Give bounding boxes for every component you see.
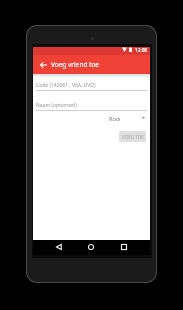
staticText: Code (142681 , V6A, DVD) xyxy=(36,82,96,89)
button[interactable]: Back xyxy=(36,58,50,72)
button[interactable]: Recent apps xyxy=(118,241,130,253)
staticText: VOEG TOE xyxy=(122,134,144,140)
staticText: 12:08 xyxy=(135,47,148,53)
staticText: Naam (optioneel) xyxy=(36,102,77,109)
staticText: Rooi xyxy=(109,115,121,122)
button[interactable]: Home xyxy=(85,241,97,253)
button[interactable]: Back xyxy=(53,241,65,253)
staticText: Voeg vriend toe xyxy=(51,60,100,69)
button[interactable]: VOEG TOE xyxy=(119,131,146,142)
button[interactable]: Rooi xyxy=(106,113,146,123)
